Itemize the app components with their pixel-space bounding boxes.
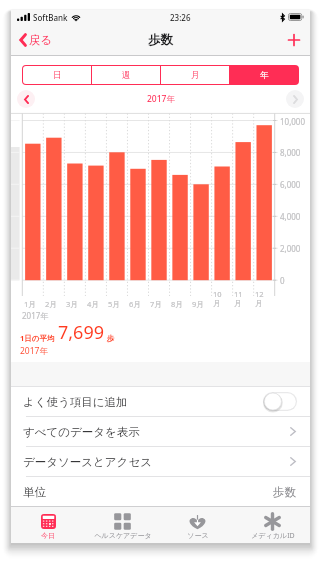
staticText: 日 bbox=[53, 70, 62, 81]
staticText: 1月 bbox=[24, 299, 36, 309]
staticText: すべてのデータを表示 bbox=[23, 425, 140, 439]
button[interactable]: データソースとアクセス bbox=[11, 447, 310, 476]
staticText: ソース bbox=[187, 531, 209, 540]
staticText: 2017年 bbox=[20, 345, 48, 357]
staticText: 9月 bbox=[192, 299, 204, 309]
staticText: 7月 bbox=[150, 299, 162, 309]
button[interactable]: 月 bbox=[161, 66, 229, 84]
staticText: 今日 bbox=[41, 531, 55, 540]
staticText: 7,699 bbox=[58, 320, 105, 345]
staticText: 10,000 bbox=[280, 116, 306, 127]
staticText: メディカルID bbox=[251, 531, 295, 541]
staticText: 8,000 bbox=[280, 147, 301, 158]
button[interactable]: よく使う項目に追加 bbox=[11, 387, 310, 416]
staticText: 歩数 bbox=[273, 485, 296, 499]
button[interactable]: 週 bbox=[92, 66, 160, 84]
staticText: 5月 bbox=[108, 299, 120, 309]
staticText: 8月 bbox=[171, 299, 183, 309]
staticText: 週 bbox=[122, 70, 131, 81]
staticText: 2017年 bbox=[147, 93, 175, 105]
button[interactable]: 日 bbox=[23, 66, 91, 84]
button[interactable]: 単位 bbox=[11, 477, 310, 506]
button[interactable]: ヘルスケアデータ bbox=[85, 507, 160, 543]
staticText: 歩数 bbox=[148, 32, 173, 48]
button[interactable]: Add bbox=[283, 29, 305, 51]
staticText: 3月 bbox=[66, 299, 78, 309]
button[interactable]: すべてのデータを表示 bbox=[11, 417, 310, 446]
staticText: 10 月 bbox=[213, 289, 222, 309]
staticText: 単位 bbox=[23, 485, 46, 499]
button[interactable]: Previous year bbox=[17, 90, 35, 108]
staticText: 2017年 bbox=[22, 310, 49, 321]
staticText: 1日の平均 bbox=[20, 333, 55, 343]
staticText: 12 月 bbox=[255, 289, 264, 309]
staticText: 0 bbox=[280, 275, 285, 286]
staticText: 2月 bbox=[45, 299, 57, 309]
staticText: 月 bbox=[191, 70, 200, 81]
button[interactable]: 戻る bbox=[15, 28, 57, 52]
staticText: 6月 bbox=[129, 299, 141, 309]
staticText: 2,000 bbox=[280, 243, 301, 254]
button[interactable]: Next year bbox=[286, 90, 304, 108]
staticText: 6,000 bbox=[280, 179, 301, 190]
staticText: データソースとアクセス bbox=[23, 455, 152, 469]
button[interactable]: メディカルID bbox=[235, 507, 310, 543]
button[interactable]: 今日 bbox=[11, 507, 85, 543]
staticText: 年 bbox=[260, 70, 269, 81]
staticText: SoftBank bbox=[33, 12, 68, 23]
staticText: 4月 bbox=[87, 299, 99, 309]
staticText: 歩 bbox=[107, 334, 115, 343]
staticText: 4,000 bbox=[280, 211, 301, 222]
staticText: 23:26 bbox=[170, 12, 191, 23]
button[interactable]: ソース bbox=[160, 507, 235, 543]
staticText: 11 月 bbox=[234, 289, 243, 309]
staticText: よく使う項目に追加 bbox=[23, 395, 128, 409]
staticText: ヘルスケアデータ bbox=[94, 531, 152, 540]
staticText: 戻る bbox=[29, 33, 53, 47]
button[interactable]: 年 bbox=[230, 66, 298, 84]
